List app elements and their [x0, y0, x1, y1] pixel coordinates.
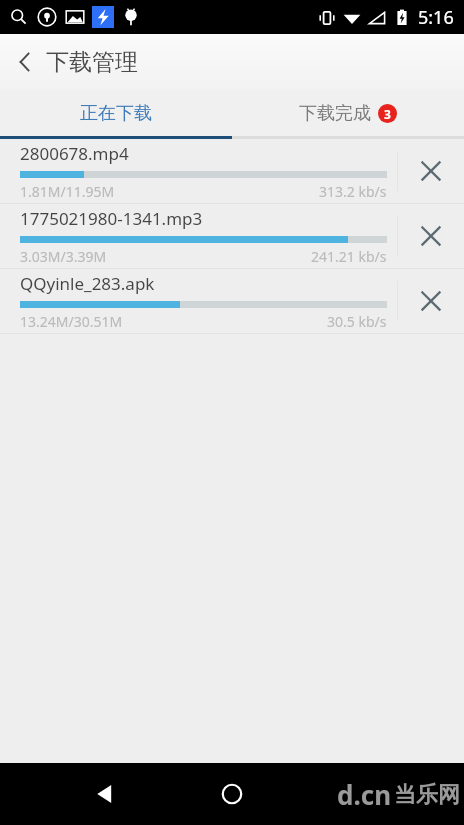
staticText: QQyinle_283.apk — [20, 272, 155, 295]
staticText: 30.5 kb/s — [327, 312, 387, 331]
button[interactable]: Home — [206, 768, 258, 820]
staticText: 正在下载 — [80, 102, 152, 125]
button[interactable]: Back — [78, 768, 130, 820]
staticText: 5:16 — [418, 5, 454, 30]
staticText: 当乐网 — [394, 781, 460, 809]
staticText: 13.24M/30.51M — [20, 312, 123, 331]
staticText: 下载管理 — [46, 48, 138, 77]
staticText: 3 — [384, 106, 391, 122]
button[interactable]: Cancel download — [398, 204, 464, 268]
staticText: 1.81M/11.95M — [20, 182, 115, 201]
staticText: 1775021980-1341.mp3 — [20, 207, 203, 230]
button[interactable]: Back — [10, 34, 138, 90]
staticText: 下载完成 — [299, 102, 371, 125]
button[interactable]: 1775021980-1341.mp3 — [0, 204, 464, 268]
staticText: d.cn — [337, 777, 392, 812]
staticText: 241.21 kb/s — [311, 247, 387, 266]
button[interactable]: 2800678.mp4 — [0, 139, 464, 203]
other: Back — [10, 47, 40, 77]
staticText: 2800678.mp4 — [20, 142, 129, 165]
staticText: 313.2 kb/s — [319, 182, 387, 201]
button[interactable]: QQyinle_283.apk — [0, 269, 464, 333]
button[interactable]: Cancel download — [398, 269, 464, 333]
button[interactable]: 下载完成 — [232, 90, 464, 136]
staticText: 3.03M/3.39M — [20, 247, 107, 266]
button[interactable]: 正在下载 — [0, 90, 232, 136]
button[interactable]: Cancel download — [398, 139, 464, 203]
